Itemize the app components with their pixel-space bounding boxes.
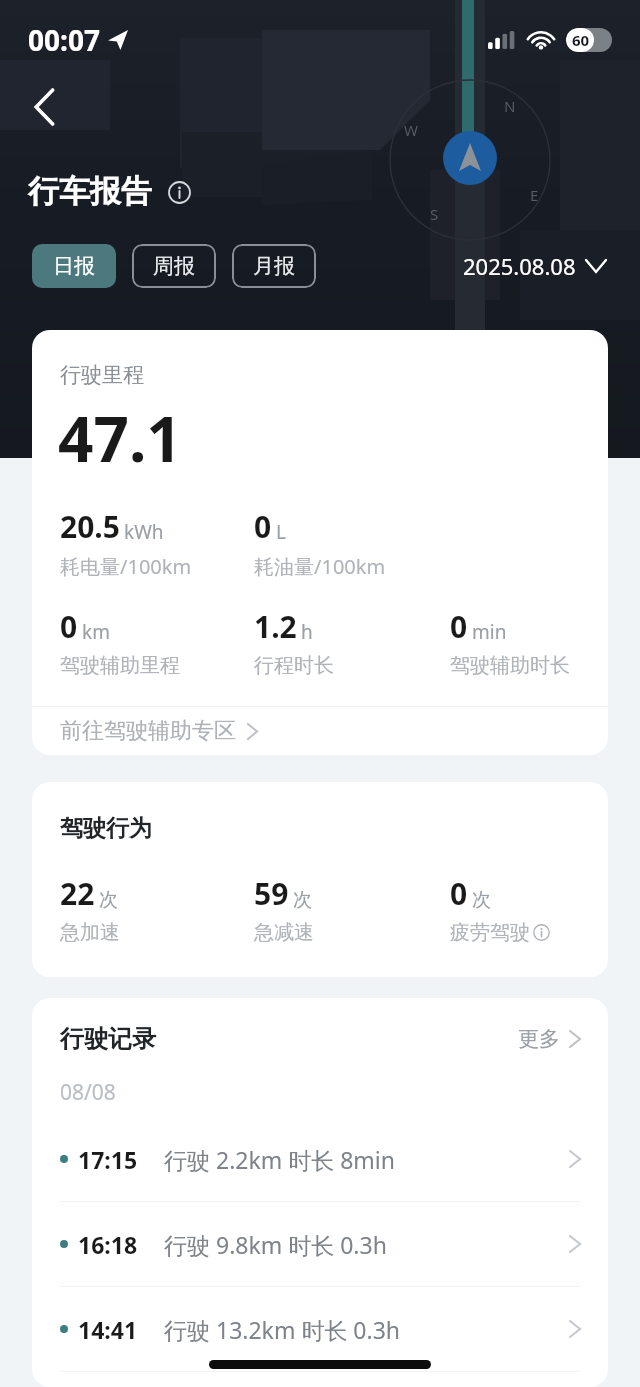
staticText: W [404,120,418,140]
staticText: 2025.08.08 [463,251,576,281]
staticText: 行驶里程 [60,362,144,388]
staticText: 次 [99,888,118,912]
staticText: E [530,185,539,205]
staticText: 00:07 [28,21,100,59]
button[interactable]: 14:41 [32,1287,608,1371]
button[interactable]: 16:18 [32,1202,608,1286]
staticText: km [82,619,110,645]
staticText: 0 [60,606,78,647]
button[interactable]: 前往驾驶辅助专区 [32,707,608,755]
staticText: 驾驶辅助时长 [450,653,570,678]
staticText: 行驶 9.8km 时长 0.3h [164,1229,387,1260]
staticText: 月报 [253,253,295,279]
staticText: 急减速 [254,920,314,945]
staticText: 16:18 [78,1229,138,1260]
staticText: 疲劳驾驶 [450,920,530,945]
button[interactable]: 17:15 [32,1117,608,1201]
staticText: 0 [450,606,468,647]
staticText: 22 [60,873,95,914]
staticText: 0 [450,873,468,914]
button[interactable]: Info [164,177,194,207]
staticText: 急加速 [60,920,120,945]
staticText: 次 [293,888,312,912]
staticText: 行驶记录 [60,1024,156,1054]
staticText: 前往驾驶辅助专区 [60,717,236,745]
button[interactable]: 周报 [132,244,216,288]
staticText: h [301,619,313,645]
staticText: 行驶 2.2km 时长 8min [164,1144,396,1175]
staticText: 驾驶行为 [60,814,152,843]
staticText: 0 [254,506,272,547]
staticText: 17:15 [78,1144,138,1175]
staticText: 47.1 [58,396,182,480]
staticText: 20.5 [60,506,120,547]
staticText: 59 [254,873,289,914]
staticText: 08/08 [60,1078,116,1107]
staticText: L [276,519,286,545]
staticText: 行程时长 [254,653,334,678]
button[interactable]: Back [0,76,90,138]
button[interactable]: 日报 [32,244,116,288]
button[interactable]: 2025.08.08 [463,251,608,281]
staticText: 1.2 [254,606,297,647]
staticText: 耗电量/100km [60,553,192,580]
staticText: 周报 [153,253,195,279]
staticText: 行车报告 [28,172,152,211]
button[interactable]: 更多 [518,1026,580,1052]
staticText: N [504,96,516,116]
staticText: S [430,204,439,224]
button[interactable]: 月报 [232,244,316,288]
staticText: 14:41 [78,1314,138,1345]
staticText: 更多 [518,1026,560,1052]
staticText: kWh [124,519,164,545]
staticText: 60 [572,30,590,50]
staticText: 耗油量/100km [254,553,386,580]
staticText: 日报 [53,253,95,279]
staticText: 驾驶辅助里程 [60,653,180,678]
staticText: 行驶 13.2km 时长 0.3h [164,1314,401,1345]
staticText: 次 [472,888,491,912]
staticText: min [472,619,507,645]
